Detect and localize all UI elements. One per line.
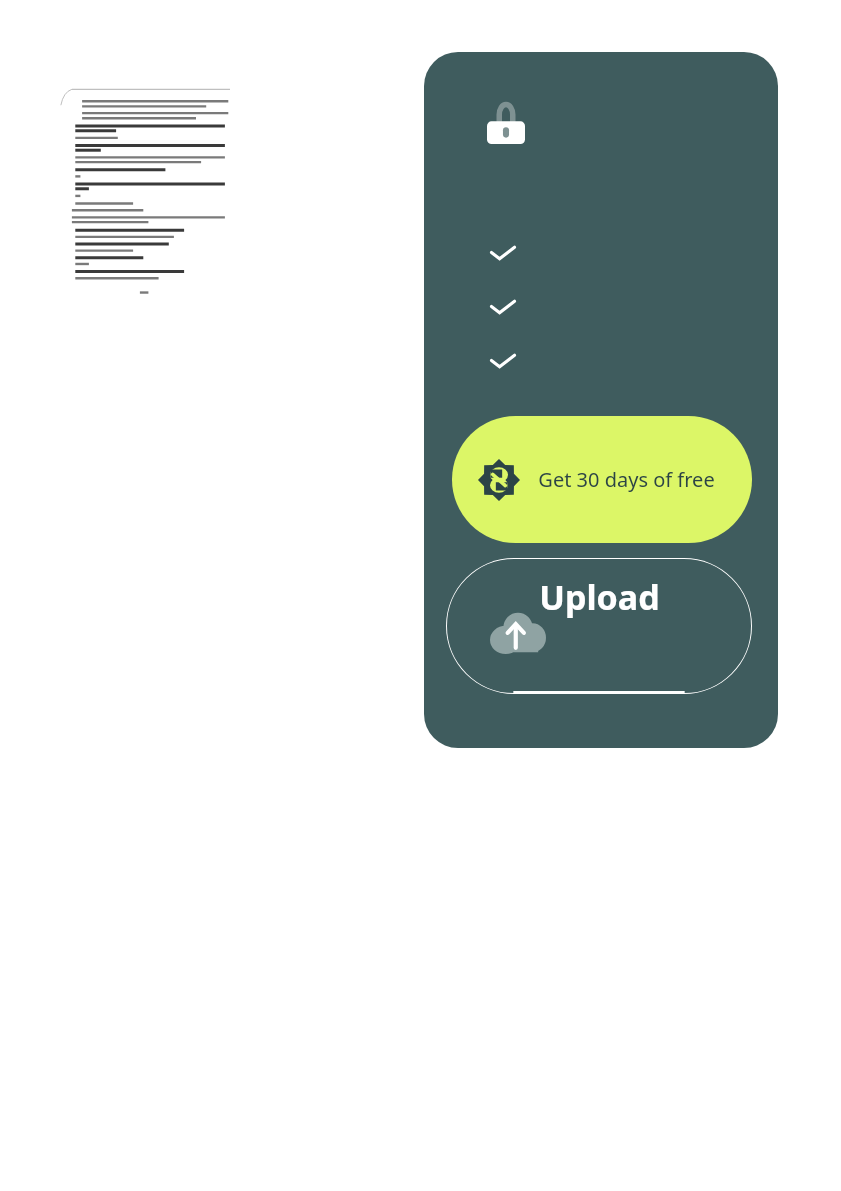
button[interactable]: Premium badge [452, 416, 752, 543]
other: Upload to cloud [490, 610, 546, 654]
staticText: Get 30 days of free [538, 466, 715, 493]
other: Included feature [486, 349, 520, 373]
other: Included feature [486, 295, 520, 319]
button[interactable]: Upload [446, 558, 752, 694]
staticText: Upload [539, 574, 660, 620]
other: Premium badge [478, 459, 520, 501]
other: Locked [487, 102, 525, 144]
other: Included feature [486, 241, 520, 265]
